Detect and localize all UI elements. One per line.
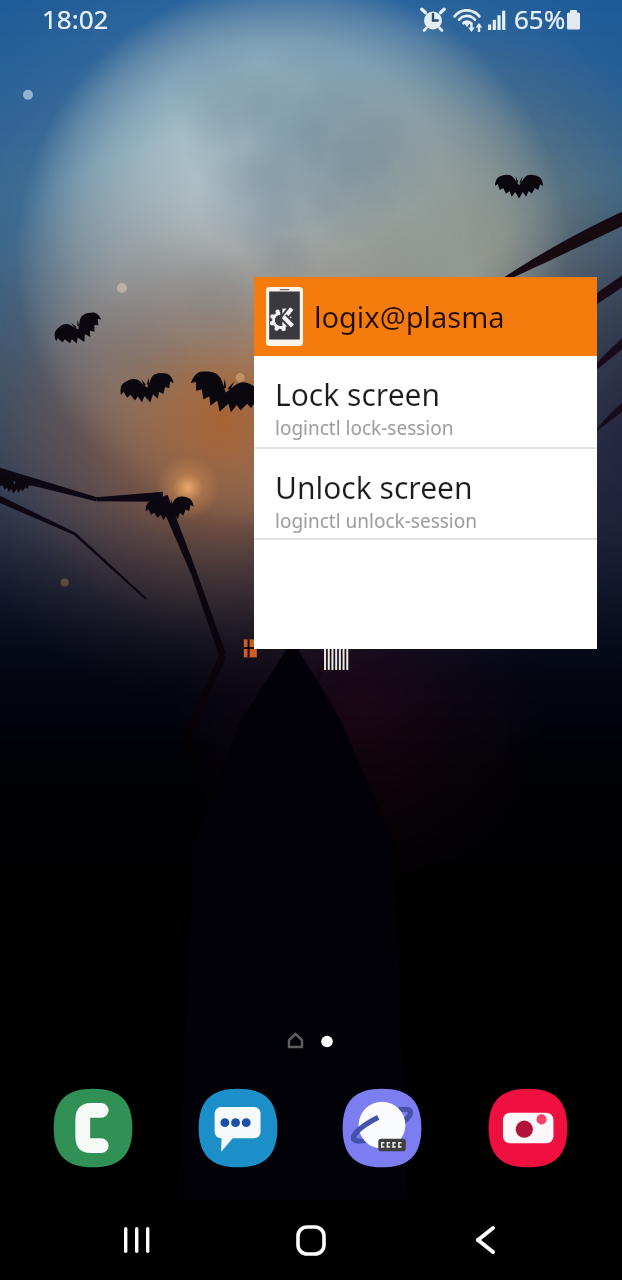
button[interactable]: Internet [341, 1087, 423, 1169]
staticText: 65% [514, 1, 566, 36]
staticText: logix@plasma [314, 297, 505, 336]
staticText: loginctl unlock-session [275, 508, 477, 534]
button[interactable]: Messages [197, 1087, 279, 1169]
button[interactable]: Home [280, 1210, 342, 1272]
staticText: loginctl lock-session [275, 415, 454, 441]
staticText: Lock screen [275, 374, 441, 415]
button[interactable]: Camera [487, 1087, 569, 1169]
staticText: Unlock screen [275, 467, 473, 508]
button[interactable]: logix@plasma [254, 277, 597, 356]
staticText: 18:02 [42, 1, 109, 36]
button[interactable]: Recents [106, 1210, 168, 1272]
button[interactable]: Phone [52, 1087, 134, 1169]
button[interactable]: Lock screen [254, 356, 597, 447]
button[interactable]: Unlock screen [254, 449, 597, 538]
button[interactable]: Back [454, 1210, 516, 1272]
